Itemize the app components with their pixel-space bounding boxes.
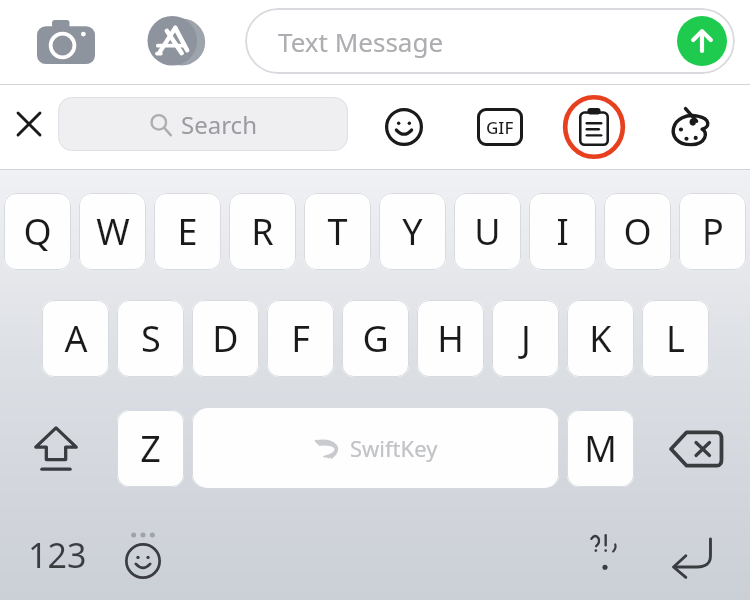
button[interactable]: Numbers [14,515,100,595]
button[interactable]: Emoji [108,515,178,595]
button[interactable]: A [42,300,109,377]
button[interactable]: E [154,193,221,270]
button[interactable]: Clipboard [562,95,626,159]
staticText: Z [140,424,161,473]
button[interactable]: C [267,410,334,487]
button[interactable]: V [342,410,409,487]
staticText: Search [181,108,257,141]
button[interactable]: S [117,300,184,377]
button[interactable]: Text Message [245,8,735,74]
button[interactable]: G [342,300,409,377]
staticText: GIF [486,116,514,139]
staticText: W [96,207,130,256]
staticText: S [141,314,161,363]
button[interactable]: J [492,300,559,377]
button[interactable]: Apps [138,10,212,74]
button[interactable]: Return [650,515,734,595]
button[interactable]: O [604,193,671,270]
staticText: P [702,207,724,256]
staticText: J [521,314,531,363]
button[interactable]: GIF [470,95,530,159]
button[interactable]: Search [58,97,348,151]
button[interactable]: Emoji [374,95,434,159]
button[interactable]: Backspace [658,410,734,487]
button[interactable]: R [229,193,296,270]
staticText: Q [23,207,52,256]
button[interactable]: F [267,300,334,377]
button[interactable]: B [417,410,484,487]
button[interactable]: H [417,300,484,377]
button[interactable]: SwiftKey [194,408,558,488]
button[interactable]: Shift [18,410,94,487]
staticText: U [474,207,501,256]
staticText: K [589,314,612,363]
button[interactable]: M [567,410,634,487]
button[interactable]: K [567,300,634,377]
staticText: L [666,314,685,363]
staticText: V [365,424,387,473]
button[interactable]: Camera [30,12,102,72]
button[interactable]: P [679,193,746,270]
staticText: I [556,207,569,256]
staticText: O [623,207,652,256]
button[interactable]: Symbols [572,515,638,595]
button[interactable]: Stickers [662,95,722,159]
button[interactable]: N [492,410,559,487]
staticText: M [584,424,617,473]
button[interactable]: T [304,193,371,270]
staticText: Y [402,207,423,256]
staticText: Text Message [278,24,444,59]
button[interactable]: U [454,193,521,270]
button[interactable]: I [529,193,596,270]
staticText: SwiftKey [350,433,438,463]
staticText: G [362,314,389,363]
staticText: R [251,207,274,256]
staticText: H [437,314,464,363]
staticText: D [212,314,239,363]
button[interactable]: Close [4,99,54,149]
button[interactable]: Q [4,193,71,270]
button[interactable]: Z [117,410,184,487]
button[interactable]: L [642,300,709,377]
staticText: T [327,207,348,256]
button[interactable]: Y [379,193,446,270]
button[interactable]: W [79,193,146,270]
staticText: 123 [28,532,87,578]
staticText: E [177,207,198,256]
button[interactable]: Send [677,16,727,66]
staticText: F [291,314,310,363]
staticText: A [64,314,88,363]
button[interactable]: D [192,300,259,377]
button[interactable]: X [192,410,259,487]
